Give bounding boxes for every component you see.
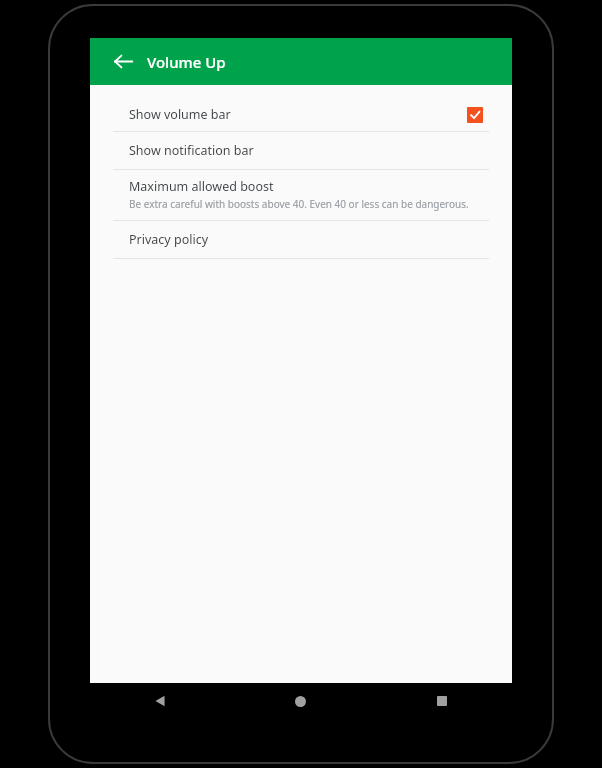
- button[interactable]: Back: [90, 683, 230, 719]
- button[interactable]: Maximum allowed boost: [90, 170, 512, 220]
- button[interactable]: Show volume bar: [90, 98, 512, 131]
- button[interactable]: Back: [99, 38, 147, 85]
- staticText: Show notification bar: [129, 142, 254, 159]
- staticText: Volume Up: [147, 52, 226, 72]
- button[interactable]: Home: [230, 683, 371, 719]
- staticText: Show volume bar: [129, 106, 467, 123]
- staticText: Maximum allowed boost: [129, 178, 274, 195]
- button[interactable]: Privacy policy: [90, 221, 512, 258]
- staticText: Privacy policy: [129, 231, 209, 248]
- button[interactable]: Show notification bar: [90, 132, 512, 169]
- staticText: Be extra careful with boosts above 40. E…: [129, 197, 469, 211]
- button[interactable]: Recent apps: [371, 683, 512, 719]
